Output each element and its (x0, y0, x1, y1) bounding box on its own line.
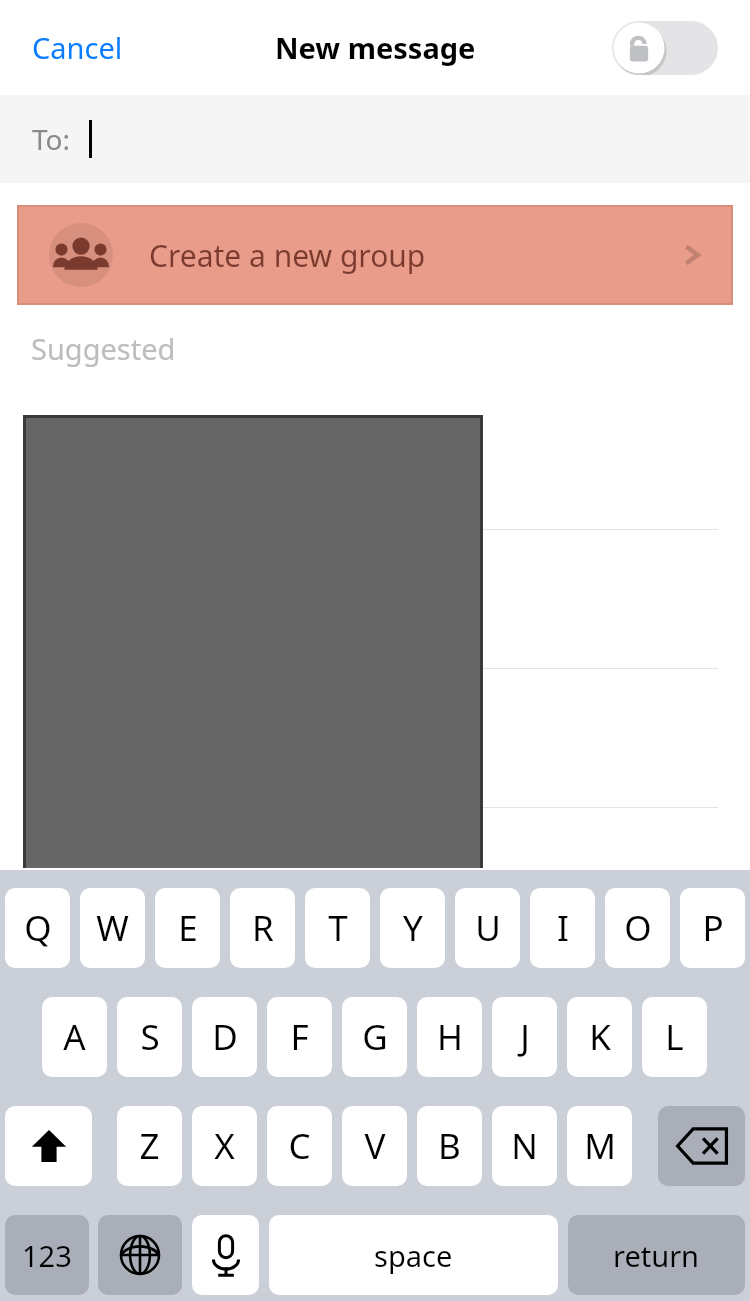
button[interactable]: H (417, 997, 482, 1077)
staticText: New message (275, 28, 476, 67)
staticText: J (520, 1013, 530, 1061)
staticText: D (212, 1013, 238, 1061)
staticText: Suggested (31, 329, 176, 368)
button[interactable]: X (192, 1106, 257, 1186)
button[interactable]: C (267, 1106, 332, 1186)
staticText: Z (139, 1122, 160, 1170)
staticText: N (511, 1122, 538, 1170)
button[interactable]: Encryption lock toggle (612, 21, 718, 75)
staticText: Cancel (32, 28, 123, 67)
staticText: X (214, 1122, 235, 1170)
button[interactable]: Cancel (18, 20, 137, 75)
staticText: I (557, 904, 569, 952)
staticText: P (702, 904, 724, 952)
button[interactable]: space (269, 1215, 558, 1295)
staticText: Create a new group (149, 235, 426, 276)
button[interactable]: L (642, 997, 707, 1077)
button[interactable]: T (305, 888, 370, 968)
staticText: F (290, 1013, 309, 1061)
button[interactable]: Y (380, 888, 445, 968)
staticText: U (475, 904, 501, 952)
staticText: G (362, 1013, 388, 1061)
staticText: E (178, 904, 198, 952)
staticText: M (584, 1122, 616, 1170)
staticText: space (374, 1236, 453, 1275)
button[interactable]: Q (5, 888, 70, 968)
staticText: B (438, 1122, 461, 1170)
staticText: K (589, 1013, 611, 1061)
button[interactable]: F (267, 997, 332, 1077)
button[interactable]: Backspace (658, 1106, 745, 1186)
button[interactable]: Dictate (192, 1215, 259, 1295)
staticText: Y (403, 904, 423, 952)
button[interactable]: 123 (5, 1215, 89, 1295)
button[interactable]: Create a new group (19, 207, 731, 303)
button[interactable]: G (342, 997, 407, 1077)
button[interactable] (0, 530, 750, 669)
staticText: R (252, 904, 274, 952)
button[interactable]: J (492, 997, 557, 1077)
button[interactable]: return (568, 1215, 745, 1295)
button[interactable]: I (530, 888, 595, 968)
button[interactable]: Switch keyboard language (98, 1215, 182, 1295)
staticText: return (613, 1236, 700, 1275)
button[interactable]: M (567, 1106, 632, 1186)
button[interactable]: R (230, 888, 295, 968)
staticText: Q (24, 904, 52, 952)
staticText: 123 (22, 1236, 72, 1275)
staticText: A (63, 1013, 86, 1061)
button[interactable]: Shift (5, 1106, 92, 1186)
staticText: V (364, 1122, 386, 1170)
button[interactable]: P (680, 888, 745, 968)
button[interactable]: V (342, 1106, 407, 1186)
staticText: O (624, 904, 652, 952)
button[interactable]: E (155, 888, 220, 968)
button[interactable]: U (455, 888, 520, 968)
button[interactable]: D (192, 997, 257, 1077)
staticText: H (437, 1013, 463, 1061)
staticText: L (665, 1013, 684, 1061)
button[interactable]: Z (117, 1106, 182, 1186)
button[interactable]: K (567, 997, 632, 1077)
button[interactable] (0, 808, 750, 947)
staticText: To: (32, 120, 71, 158)
staticText: S (140, 1013, 160, 1061)
button[interactable]: W (80, 888, 145, 968)
button[interactable]: A (42, 997, 107, 1077)
staticText: W (96, 904, 129, 952)
button[interactable] (0, 391, 750, 530)
button[interactable] (0, 669, 750, 808)
staticText: C (288, 1122, 311, 1170)
button[interactable]: O (605, 888, 670, 968)
button[interactable]: B (417, 1106, 482, 1186)
button[interactable]: S (117, 997, 182, 1077)
staticText: T (328, 904, 348, 952)
button[interactable]: N (492, 1106, 557, 1186)
button[interactable]: To: (0, 95, 750, 183)
